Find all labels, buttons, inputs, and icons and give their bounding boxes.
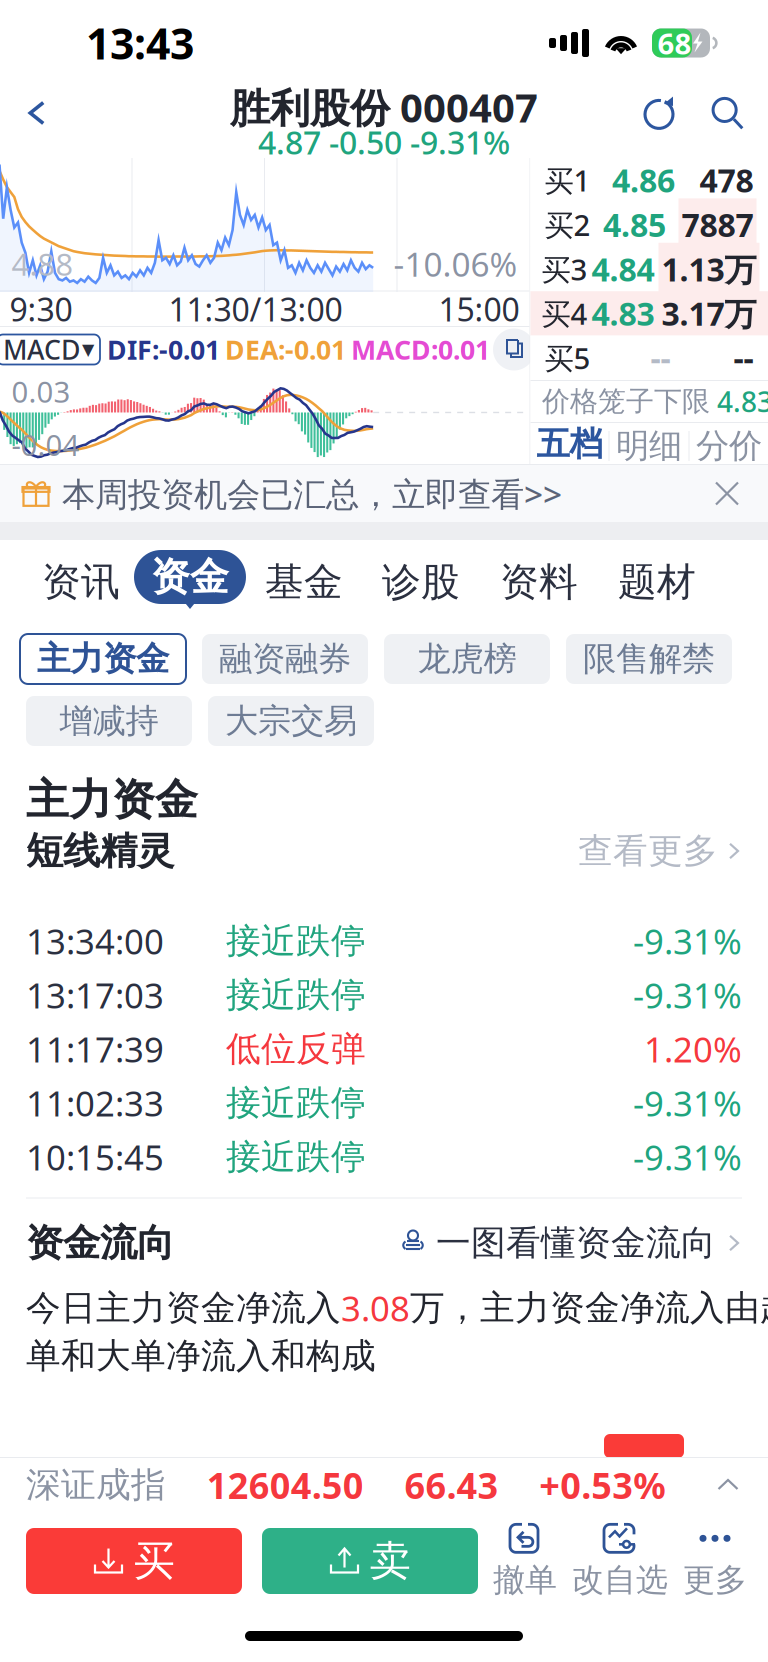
staticText: 买5 bbox=[544, 338, 590, 377]
staticText: MACD bbox=[3, 332, 80, 367]
staticText: 3.17万 bbox=[661, 292, 756, 335]
button[interactable]: MACD bbox=[0, 334, 100, 364]
staticText: 深证成指 bbox=[26, 1464, 166, 1506]
staticText: 一图看懂资金流向 bbox=[436, 1222, 716, 1264]
staticText: 1.13万 bbox=[661, 248, 756, 290]
staticText: 主力资金 bbox=[37, 638, 169, 679]
staticText: 4.83 bbox=[591, 292, 654, 335]
staticText: -10.06% bbox=[393, 242, 517, 286]
staticText: 短线精灵 bbox=[26, 828, 174, 874]
staticText: 4.84 bbox=[591, 248, 654, 290]
staticText: 改自选 bbox=[572, 1560, 668, 1600]
staticText: 68 bbox=[657, 23, 691, 62]
button[interactable]: 诊股 bbox=[362, 553, 480, 611]
staticText: 478 bbox=[699, 159, 753, 201]
staticText: 分价 bbox=[696, 425, 762, 466]
staticText: 资金流向 bbox=[26, 1220, 174, 1266]
staticText: 更多 bbox=[683, 1560, 747, 1600]
staticText: 主力资金 bbox=[26, 774, 198, 826]
button[interactable]: 资料 bbox=[480, 553, 598, 611]
staticText: 今日主力资金净流入 bbox=[26, 1287, 341, 1329]
staticText: 0.03 bbox=[11, 372, 70, 411]
button[interactable]: 大宗交易 bbox=[208, 696, 374, 746]
staticText: 龙虎榜 bbox=[417, 638, 516, 679]
button[interactable]: 买 bbox=[26, 1528, 242, 1594]
button[interactable]: 资金 bbox=[134, 550, 246, 614]
staticText: -0.04 bbox=[11, 425, 79, 464]
button[interactable]: 卖 bbox=[262, 1528, 478, 1594]
staticText: 撤单 bbox=[493, 1560, 557, 1600]
button[interactable]: 五档 bbox=[530, 423, 608, 469]
staticText: 卖 bbox=[369, 1536, 410, 1586]
staticText: 11:02:33 bbox=[26, 1080, 164, 1126]
staticText: 买3 bbox=[541, 249, 587, 288]
staticText: 4.85 bbox=[603, 203, 666, 246]
button[interactable]: 融资融券 bbox=[202, 634, 368, 684]
button[interactable]: 一图看懂资金流向 bbox=[402, 1212, 744, 1274]
staticText: 大宗交易 bbox=[225, 700, 357, 741]
staticText: 资讯 bbox=[42, 558, 120, 606]
staticText: 增减持 bbox=[59, 700, 158, 741]
button[interactable]: 更多 bbox=[668, 1522, 762, 1600]
button[interactable]: 资讯 bbox=[28, 553, 134, 611]
staticText: -9.31% bbox=[633, 972, 742, 1018]
staticText: 4.87 -0.50 -9.31% bbox=[258, 121, 510, 163]
button[interactable]: 限售解禁 bbox=[566, 634, 732, 684]
staticText: 买4 bbox=[541, 294, 587, 333]
staticText: DEA:-0.01 bbox=[225, 332, 346, 367]
staticText: 66.43 bbox=[404, 1461, 498, 1509]
staticText: 接近跌停 bbox=[226, 974, 366, 1016]
staticText: 本周投资机会已汇总，立即查看>> bbox=[62, 471, 562, 516]
staticText: MACD:0.01 bbox=[351, 332, 490, 367]
button[interactable]: 题材 bbox=[598, 553, 716, 611]
staticText: 基金 bbox=[265, 558, 343, 606]
staticText: -- bbox=[650, 337, 670, 379]
button[interactable]: 查看更多 bbox=[578, 820, 744, 882]
staticText: -9.31% bbox=[633, 1134, 742, 1180]
staticText: 10:15:45 bbox=[26, 1134, 164, 1180]
staticText: 13:43 bbox=[86, 15, 194, 71]
button[interactable]: Back bbox=[8, 86, 66, 140]
button[interactable]: 龙虎榜 bbox=[384, 634, 550, 684]
staticText: 融资融券 bbox=[219, 638, 351, 679]
button[interactable]: Refresh bbox=[624, 86, 694, 140]
staticText: 明细 bbox=[616, 425, 682, 466]
staticText: 4.86 bbox=[612, 159, 675, 201]
staticText: 买1 bbox=[544, 161, 590, 200]
staticText: -9.31% bbox=[633, 1080, 742, 1126]
staticText: 胜利股份 000407 bbox=[230, 80, 538, 133]
staticText: 买2 bbox=[544, 205, 590, 244]
staticText: ▼ bbox=[82, 340, 94, 359]
staticText: 题材 bbox=[618, 558, 696, 606]
button[interactable]: Expand indices bbox=[706, 1463, 750, 1507]
staticText: 五档 bbox=[536, 423, 602, 464]
button[interactable]: 明细 bbox=[609, 423, 688, 469]
button[interactable]: 主力资金 bbox=[20, 634, 186, 684]
staticText: +0.53% bbox=[539, 1461, 665, 1509]
staticText: 11:30/13:00 bbox=[168, 288, 342, 330]
button[interactable]: Chart tools bbox=[492, 327, 536, 371]
staticText: 买 bbox=[133, 1536, 174, 1586]
staticText: -9.31% bbox=[633, 918, 742, 964]
staticText: 接近跌停 bbox=[226, 1136, 366, 1178]
staticText: 9:30 bbox=[9, 288, 72, 330]
staticText: 单和大单净流入和构成 bbox=[26, 1335, 376, 1377]
button[interactable]: Search bbox=[694, 86, 760, 140]
staticText: 资金 bbox=[151, 553, 229, 601]
staticText: 4.83 bbox=[710, 383, 768, 420]
staticText: 1.20% bbox=[644, 1026, 742, 1072]
button[interactable]: 增减持 bbox=[26, 696, 192, 746]
button[interactable]: 基金 bbox=[246, 553, 362, 611]
staticText: 12604.50 bbox=[207, 1461, 364, 1509]
staticText: 限售解禁 bbox=[583, 638, 715, 679]
staticText: 资料 bbox=[500, 558, 578, 606]
staticText: 价格笼子下限 bbox=[542, 384, 710, 419]
staticText: 万，主力资金净流入由超大 bbox=[410, 1287, 768, 1329]
staticText: 3.08 bbox=[341, 1285, 410, 1331]
staticText: 7887 bbox=[681, 203, 753, 246]
staticText: DIF:-0.01 bbox=[107, 332, 220, 367]
button[interactable]: 改自选 bbox=[572, 1522, 668, 1600]
button[interactable]: 撤单 bbox=[478, 1522, 572, 1600]
button[interactable]: 分价 bbox=[689, 423, 768, 469]
button[interactable]: Close bbox=[698, 464, 756, 522]
